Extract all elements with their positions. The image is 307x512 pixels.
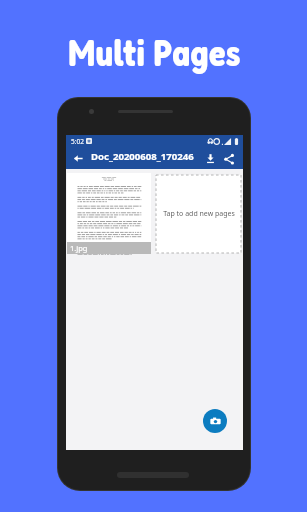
staticText: 1.jpg [70, 243, 88, 253]
staticText: Doc_20200608_170246 [91, 150, 194, 163]
button[interactable]: Tap to add new pages [156, 175, 241, 253]
staticText: 5:02 [71, 137, 84, 146]
button[interactable]: Back [70, 150, 86, 166]
staticText: Multi Pages [68, 29, 241, 74]
staticText: Tap to add new pages [163, 209, 235, 219]
button[interactable]: Take photo [203, 409, 227, 433]
button[interactable]: Share [221, 151, 236, 166]
button[interactable]: Download [203, 151, 218, 166]
button[interactable]: 1.jpg [67, 173, 151, 254]
